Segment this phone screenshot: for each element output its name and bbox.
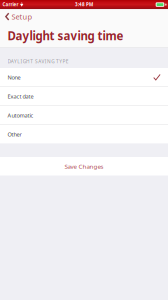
staticText: Carrier — [2, 2, 18, 7]
staticText: Automatic — [7, 111, 33, 119]
staticText: DAYLIGHT SAVING TYPE — [7, 58, 68, 64]
staticText: Setup — [11, 12, 32, 21]
button[interactable]: Exact date — [0, 87, 168, 105]
button[interactable]: Automatic — [0, 106, 168, 124]
staticText: Other — [7, 130, 21, 138]
staticText: Save Changes — [64, 162, 103, 170]
button[interactable]: Other — [0, 125, 168, 143]
button[interactable]: Save Changes — [0, 157, 168, 175]
button[interactable]: Setup — [0, 9, 36, 24]
staticText: None — [7, 73, 20, 81]
staticText: Exact date — [7, 92, 33, 100]
button[interactable]: None — [0, 68, 168, 86]
staticText: 3:48 PM — [75, 2, 93, 8]
staticText: Daylight saving time — [7, 28, 123, 43]
